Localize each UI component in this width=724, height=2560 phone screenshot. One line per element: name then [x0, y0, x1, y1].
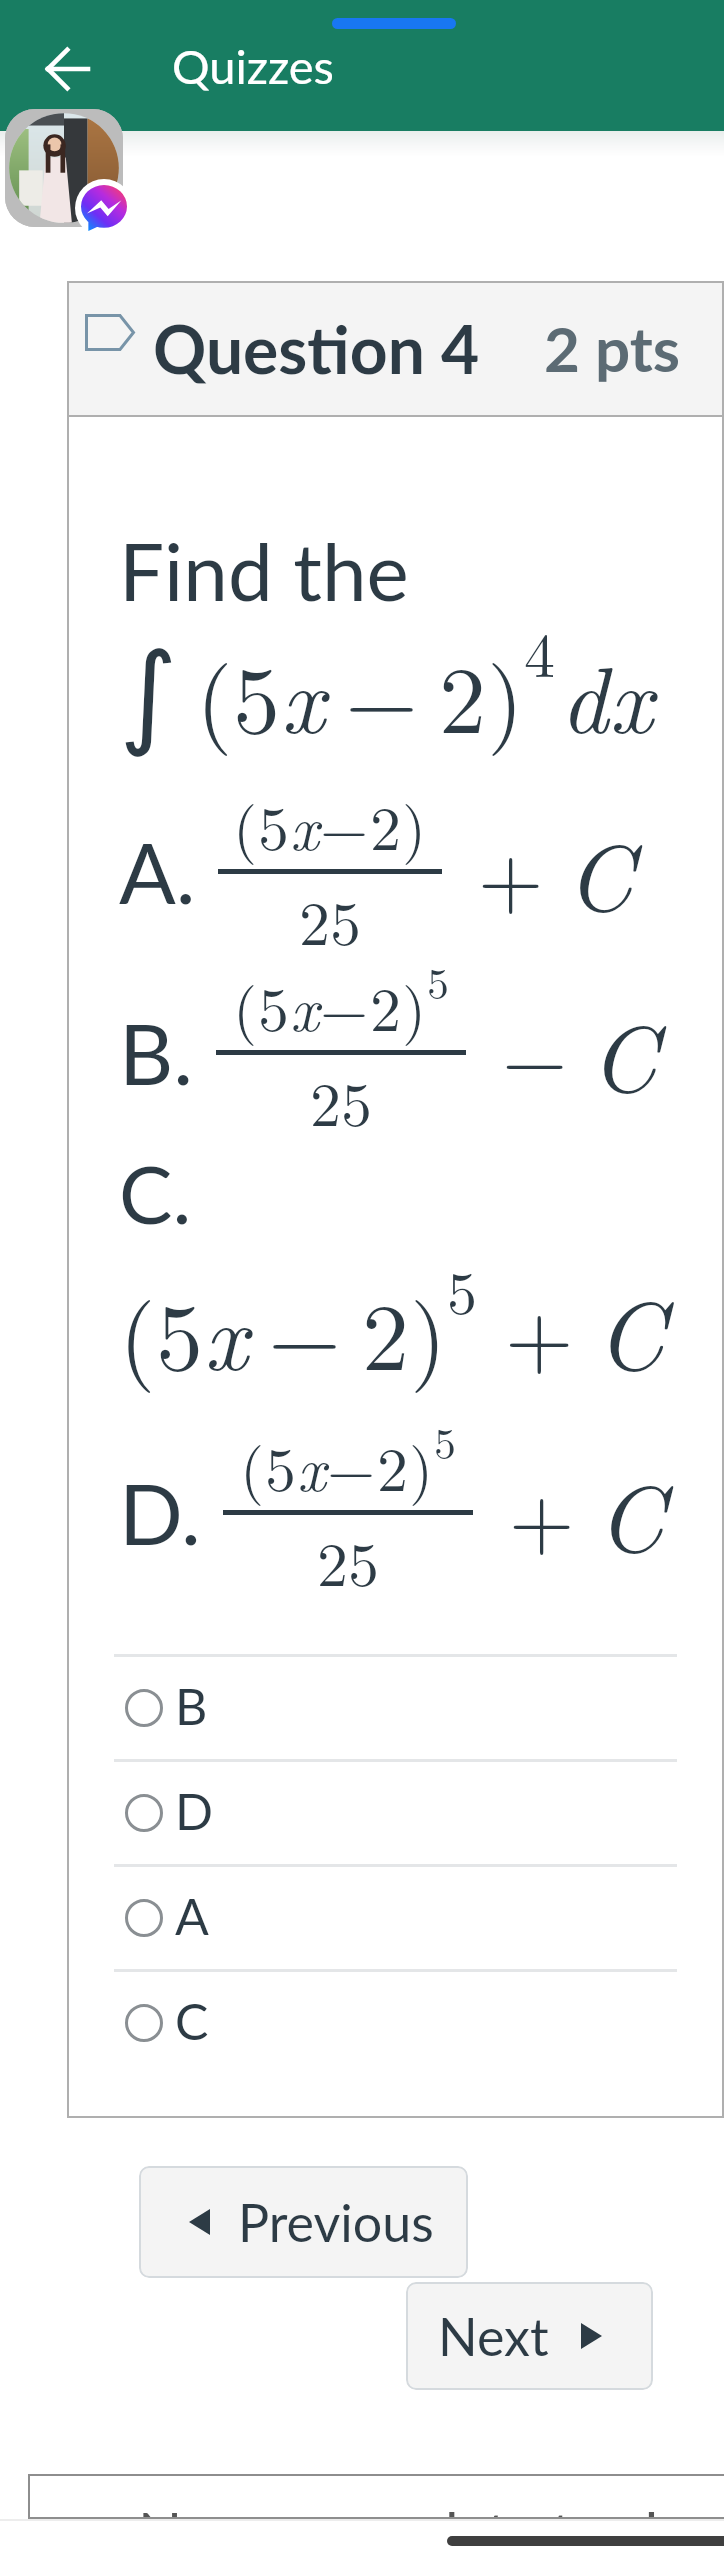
- button[interactable]: Previous: [139, 2166, 468, 2278]
- button[interactable]: Back: [26, 27, 110, 111]
- staticText: (: [233, 961, 258, 1049]
- staticText: −: [320, 780, 369, 868]
- staticText: d: [560, 627, 609, 760]
- staticText: ): [402, 961, 427, 1049]
- staticText: D: [175, 1781, 214, 1841]
- staticText: 2: [377, 1421, 409, 1509]
- button[interactable]: B: [114, 1657, 677, 1759]
- staticText: 2: [370, 961, 402, 1049]
- staticText: 25: [317, 1516, 380, 1604]
- staticText: 2: [439, 627, 487, 760]
- staticText: 2: [370, 780, 402, 868]
- staticText: +: [509, 1453, 575, 1572]
- button[interactable]: Messenger chat head: [5, 109, 123, 227]
- staticText: D.: [119, 1462, 201, 1563]
- staticText: ): [410, 1264, 447, 1397]
- staticText: 2: [362, 1264, 410, 1397]
- staticText: 5: [258, 780, 290, 868]
- staticText: B.: [119, 1002, 194, 1103]
- button[interactable]: Flag question: [85, 314, 135, 351]
- staticText: B: [175, 1676, 208, 1736]
- staticText: A.: [119, 821, 196, 922]
- staticText: −: [502, 993, 568, 1112]
- staticText: Quizzes: [172, 38, 334, 94]
- staticText: −: [268, 1264, 342, 1397]
- staticText: 5: [233, 627, 281, 760]
- staticText: x: [290, 780, 319, 868]
- staticText: −: [320, 961, 369, 1049]
- staticText: ∫: [119, 629, 178, 759]
- staticText: Find the: [119, 522, 409, 618]
- staticText: 5: [265, 1421, 297, 1509]
- staticText: Next: [438, 2305, 549, 2367]
- staticText: (: [233, 780, 258, 868]
- staticText: C.: [119, 1145, 192, 1241]
- staticText: x: [290, 961, 319, 1049]
- staticText: 5: [434, 1409, 456, 1471]
- staticText: 5: [447, 1246, 477, 1331]
- staticText: ): [402, 780, 427, 868]
- staticText: 5: [258, 961, 290, 1049]
- staticText: C: [596, 1262, 665, 1398]
- staticText: (: [240, 1421, 265, 1509]
- staticText: C: [590, 986, 658, 1119]
- staticText: A: [175, 1886, 209, 1946]
- staticText: C: [597, 1446, 665, 1579]
- staticText: 5: [156, 1264, 204, 1397]
- button[interactable]: C: [114, 1972, 677, 2074]
- staticText: +: [478, 812, 544, 931]
- staticText: x: [609, 627, 653, 760]
- staticText: ): [409, 1421, 434, 1509]
- staticText: x: [204, 1264, 248, 1397]
- staticText: −: [327, 1421, 376, 1509]
- staticText: −: [345, 627, 419, 760]
- staticText: 25: [310, 1056, 373, 1144]
- staticText: (: [119, 1264, 156, 1397]
- staticText: +: [505, 1268, 574, 1393]
- staticText: x: [297, 1421, 326, 1509]
- staticText: 4: [524, 607, 556, 695]
- button[interactable]: A: [114, 1867, 677, 1969]
- staticText: ): [487, 627, 524, 760]
- button[interactable]: D: [114, 1762, 677, 1864]
- staticText: Question 4: [153, 309, 480, 388]
- staticText: C: [175, 1991, 209, 2051]
- staticText: x: [281, 627, 325, 760]
- staticText: 5: [427, 949, 449, 1011]
- staticText: (: [196, 627, 233, 760]
- staticText: C: [566, 805, 634, 938]
- staticText: 25: [299, 875, 362, 963]
- button[interactable]: Next: [406, 2282, 653, 2390]
- staticText: 2 pts: [544, 311, 681, 385]
- staticText: Previous: [238, 2191, 434, 2253]
- staticText: No answer data to show: [138, 2498, 724, 2519]
